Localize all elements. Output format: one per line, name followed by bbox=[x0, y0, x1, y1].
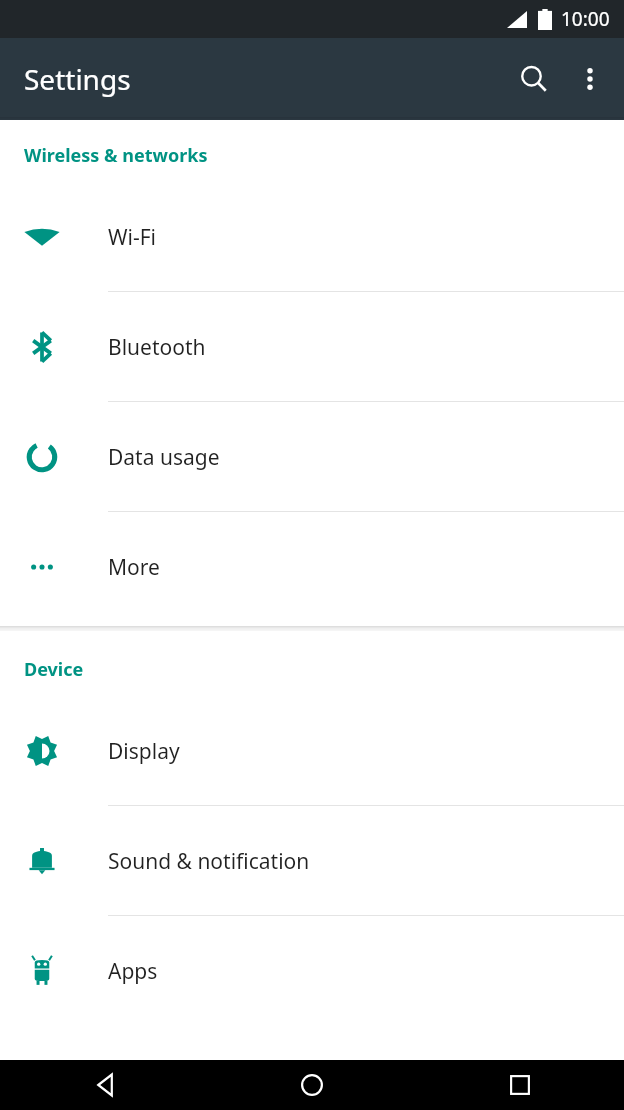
button[interactable]: Sound & notification bbox=[0, 806, 624, 916]
staticText: Wireless & networks bbox=[24, 143, 208, 168]
button[interactable]: Wi-Fi bbox=[0, 182, 624, 292]
button[interactable]: Back bbox=[0, 1060, 208, 1110]
staticText: Wi-Fi bbox=[108, 223, 157, 252]
button[interactable]: Recent apps bbox=[416, 1060, 624, 1110]
button[interactable]: More options bbox=[562, 51, 618, 107]
staticText: More bbox=[108, 553, 160, 582]
button[interactable]: Display bbox=[0, 696, 624, 806]
staticText: Data usage bbox=[108, 443, 220, 472]
staticText: Apps bbox=[108, 957, 158, 986]
staticText: Display bbox=[108, 737, 180, 766]
button[interactable]: Bluetooth bbox=[0, 292, 624, 402]
button[interactable]: More bbox=[0, 512, 624, 622]
staticText: Device bbox=[24, 657, 84, 682]
button[interactable]: Data usage bbox=[0, 402, 624, 512]
staticText: Sound & notification bbox=[108, 847, 310, 876]
staticText: 10:00 bbox=[561, 6, 610, 32]
staticText: Settings bbox=[24, 60, 131, 98]
staticText: Bluetooth bbox=[108, 333, 206, 362]
button[interactable]: Home bbox=[208, 1060, 416, 1110]
button[interactable]: Apps bbox=[0, 916, 624, 1026]
button[interactable]: Search bbox=[506, 51, 562, 107]
